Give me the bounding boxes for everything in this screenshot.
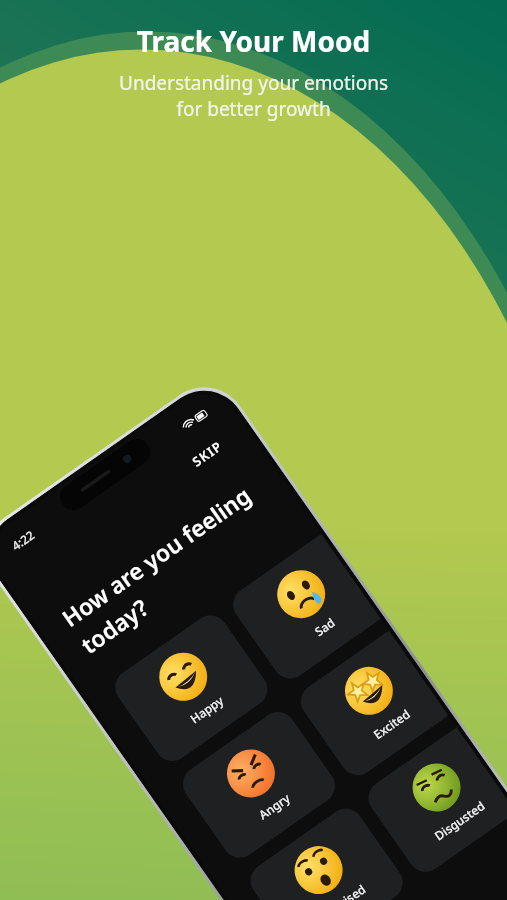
staticText: Disgusted xyxy=(431,797,488,843)
staticText: How are you feeling xyxy=(55,479,257,633)
staticText: Happy xyxy=(187,692,226,726)
staticText: 4:22 xyxy=(8,527,37,553)
button[interactable]: Excited xyxy=(294,630,448,782)
staticText: Excited xyxy=(370,705,414,742)
staticText: Sad xyxy=(311,614,338,639)
staticText: Angry xyxy=(255,789,293,822)
staticText: Surprised xyxy=(314,880,369,900)
button[interactable]: Happy xyxy=(108,608,274,768)
staticText: SKIP xyxy=(188,436,227,470)
button[interactable]: Surprised xyxy=(244,802,410,900)
button[interactable]: SKIP xyxy=(180,428,235,478)
staticText: today? xyxy=(74,591,154,660)
staticText: Track Your Mood xyxy=(0,22,507,60)
button[interactable]: Disgusted xyxy=(361,727,507,879)
staticText: for better growth xyxy=(0,96,507,122)
staticText: Understanding your emotions xyxy=(0,70,507,96)
button[interactable]: Angry xyxy=(176,705,342,865)
button[interactable]: Sad xyxy=(226,534,381,685)
